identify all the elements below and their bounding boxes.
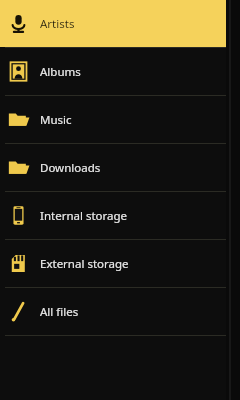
button[interactable]: Music — [0, 96, 226, 143]
staticText: Downloads — [40, 160, 101, 176]
staticText: Albums — [40, 64, 81, 80]
staticText: All files — [40, 304, 79, 320]
button[interactable]: External storage — [0, 240, 226, 287]
staticText: External storage — [40, 256, 129, 272]
button[interactable]: Artists — [0, 0, 226, 47]
staticText: Internal storage — [40, 208, 128, 224]
button[interactable]: Internal storage — [0, 192, 226, 239]
button[interactable]: Downloads — [0, 144, 226, 191]
button[interactable]: All files — [0, 288, 226, 335]
button[interactable]: Albums — [0, 48, 226, 95]
staticText: Music — [40, 112, 72, 128]
staticText: Artists — [40, 16, 75, 32]
